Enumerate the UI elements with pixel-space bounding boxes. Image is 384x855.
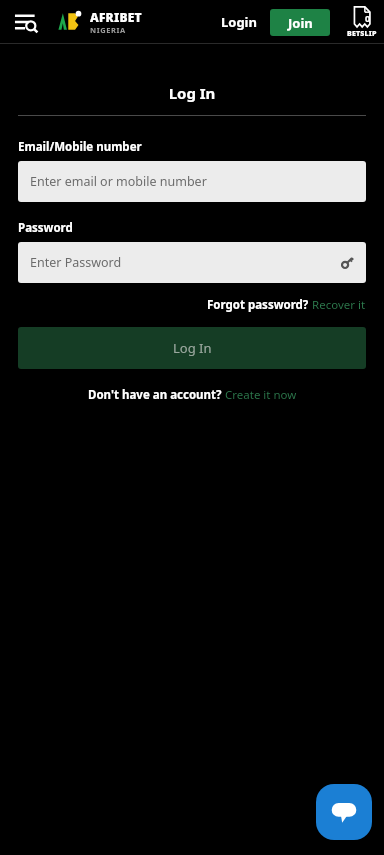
staticText: AFRIBET: [90, 9, 142, 25]
button[interactable]: Log In: [18, 327, 366, 369]
staticText: Enter Password: [30, 254, 122, 271]
staticText: Login: [221, 13, 257, 31]
staticText: 0: [365, 12, 371, 24]
staticText: Recover it: [312, 297, 366, 313]
staticText: Forgot password?: [207, 297, 312, 313]
staticText: Create it now: [225, 387, 297, 403]
staticText: NIGERIA: [90, 25, 126, 35]
staticText: Don't have an account?: [88, 387, 225, 403]
staticText: Enter email or mobile number: [30, 173, 207, 190]
button[interactable]: Enter email or mobile number: [18, 161, 366, 202]
staticText: Email/Mobile number: [18, 139, 142, 155]
button[interactable]: Login: [221, 13, 257, 31]
button[interactable]: Menu and search: [9, 5, 43, 39]
staticText: Log In: [0, 83, 384, 103]
button[interactable]: Betslip: [347, 6, 377, 39]
button[interactable]: Show password: [338, 254, 356, 272]
button[interactable]: Join: [270, 9, 330, 36]
button[interactable]: AFRIBET: [54, 9, 142, 35]
staticText: Password: [18, 220, 73, 236]
staticText: Join: [288, 14, 313, 32]
staticText: BETSLIP: [347, 29, 377, 39]
button[interactable]: Open chat: [316, 784, 372, 840]
staticText: Log In: [173, 339, 212, 357]
button[interactable]: Recover it: [312, 297, 366, 313]
button[interactable]: Enter Password: [18, 242, 366, 283]
button[interactable]: Create it now: [225, 387, 297, 403]
